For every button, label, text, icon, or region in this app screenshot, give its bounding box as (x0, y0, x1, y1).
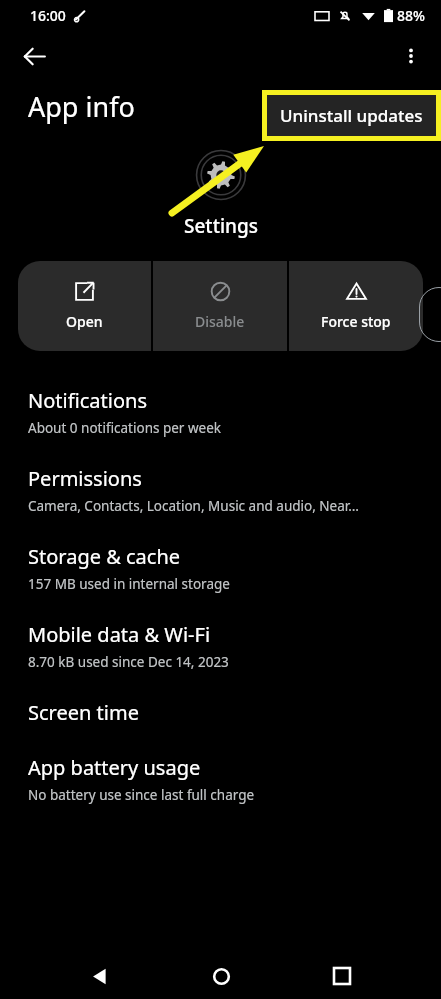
staticText: Storage & cache (28, 543, 181, 570)
button[interactable]: Open (18, 261, 151, 351)
button[interactable]: App battery usage (0, 740, 441, 818)
button[interactable]: Disable (153, 261, 287, 351)
staticText: Camera, Contacts, Location, Music and au… (28, 497, 359, 515)
staticText: Disable (195, 312, 245, 331)
staticText: Permissions (28, 465, 142, 492)
button[interactable]: Permissions (0, 451, 441, 529)
staticText: Notifications (28, 387, 147, 414)
staticText: No battery use since last full charge (28, 786, 255, 804)
staticText: About 0 notifications per week (28, 419, 221, 437)
staticText: Settings (184, 213, 258, 239)
staticText: Mobile data & Wi-Fi (28, 621, 211, 648)
button[interactable]: Screen time (0, 685, 441, 740)
staticText: 8.70 kB used since Dec 14, 2023 (28, 653, 229, 671)
staticText: App info (28, 88, 135, 125)
button[interactable]: Home (198, 953, 244, 999)
staticText: 16:00 (30, 6, 66, 25)
staticText: App battery usage (28, 754, 201, 781)
button[interactable]: Force stop (289, 261, 423, 351)
staticText: 88% (397, 6, 425, 25)
button[interactable]: Back (12, 34, 56, 78)
button[interactable]: Back (76, 953, 122, 999)
staticText: Open (66, 312, 103, 331)
staticText: Force stop (321, 312, 391, 331)
staticText: 157 MB used in internal storage (28, 575, 230, 593)
button[interactable]: Notifications (0, 373, 441, 451)
staticText: Screen time (28, 699, 139, 726)
button[interactable]: Storage & cache (0, 529, 441, 607)
button[interactable]: Mobile data & Wi-Fi (0, 607, 441, 685)
button[interactable]: Recent apps (319, 953, 365, 999)
button[interactable]: More options (389, 34, 433, 78)
staticText: Uninstall updates (280, 104, 423, 127)
